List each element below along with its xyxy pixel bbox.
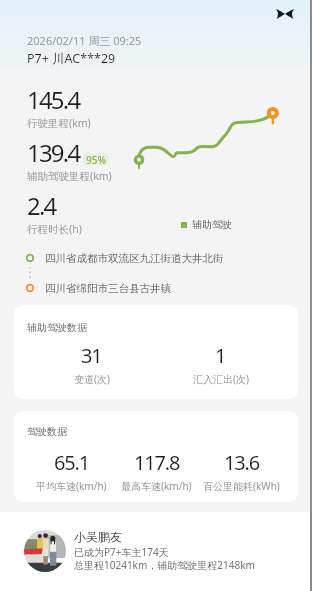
staticText: 117.8 bbox=[134, 449, 180, 476]
staticText: 辅助驾驶里程(km) bbox=[27, 169, 112, 183]
staticText: 行驶里程(km) bbox=[27, 116, 91, 130]
button[interactable]: 四川省成都市双流区九江街道大井北街 bbox=[0, 249, 312, 267]
staticText: 1 bbox=[215, 342, 226, 369]
staticText: 四川省成都市双流区九江街道大井北街 bbox=[45, 252, 224, 265]
staticText: 31 bbox=[81, 342, 102, 369]
staticText: 总里程10241km，辅助驾驶里程2148km bbox=[74, 558, 255, 572]
staticText: 小吴鹏友 bbox=[74, 529, 122, 544]
button[interactable]: Share bbox=[273, 2, 297, 26]
staticText: 139.4 bbox=[27, 136, 80, 169]
staticText: 平均车速(km/h) bbox=[36, 479, 107, 493]
staticText: 汇入汇出(次) bbox=[193, 372, 249, 386]
button[interactable]: 四川省绵阳市三台县古井镇 bbox=[0, 279, 312, 297]
staticText: 辅助驾驶 bbox=[192, 218, 232, 231]
staticText: 145.4 bbox=[27, 83, 80, 116]
staticText: 四川省绵阳市三台县古井镇 bbox=[45, 282, 171, 295]
staticText: 65.1 bbox=[54, 449, 89, 476]
staticText: 2026/02/11 周三 09:25 bbox=[27, 33, 142, 48]
staticText: 辅助驾驶数据 bbox=[27, 321, 87, 334]
staticText: P7+ 川AC***29 bbox=[27, 50, 116, 67]
staticText: 13.6 bbox=[224, 449, 259, 476]
staticText: 95% bbox=[86, 153, 106, 165]
staticText: 百公里能耗(kWh) bbox=[203, 479, 280, 493]
staticText: 驾驶数据 bbox=[27, 425, 67, 438]
button[interactable]: 小吴鹏友 bbox=[0, 512, 312, 591]
staticText: 已成为P7+车主174天 bbox=[74, 545, 169, 559]
staticText: 行程时长(h) bbox=[27, 222, 82, 236]
staticText: 2.4 bbox=[27, 189, 56, 222]
button[interactable]: 驾驶数据 bbox=[14, 411, 298, 502]
staticText: 变道(次) bbox=[74, 372, 110, 386]
staticText: 最高车速(km/h) bbox=[121, 479, 192, 493]
button[interactable]: 辅助驾驶数据 bbox=[14, 305, 298, 399]
